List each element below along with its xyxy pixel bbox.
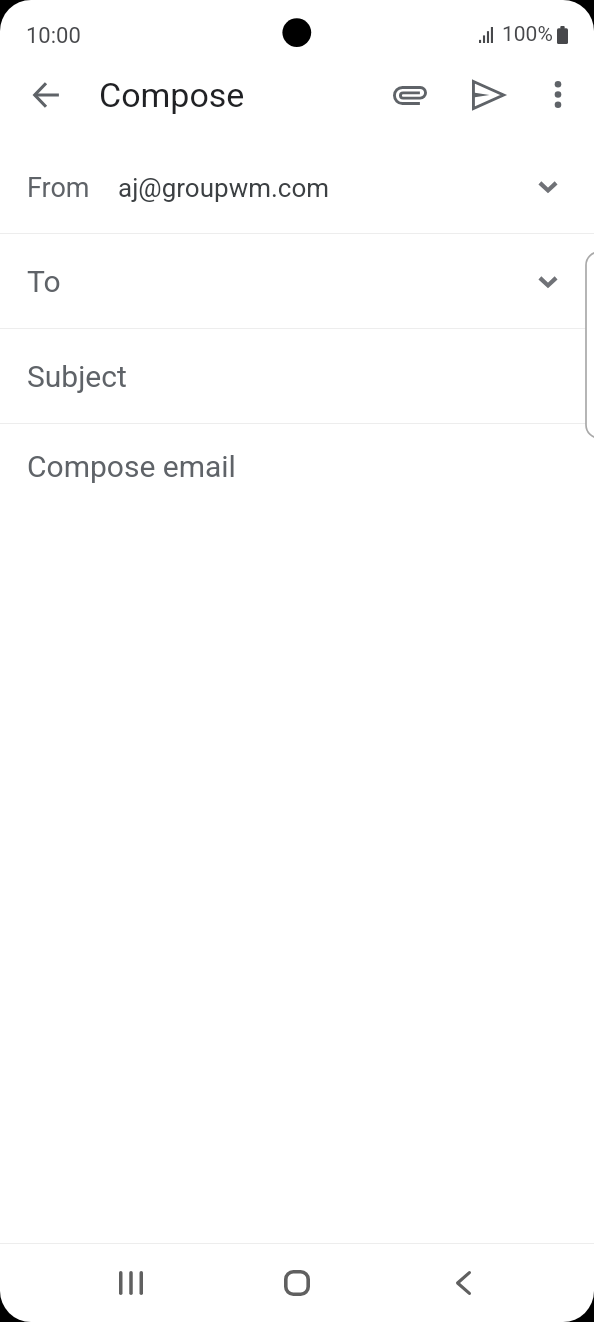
- button[interactable]: From: [0, 139, 594, 233]
- button[interactable]: Recent apps: [91, 1244, 171, 1322]
- staticText: From: [27, 172, 90, 204]
- button[interactable]: Attach file: [377, 63, 442, 128]
- staticText: 100%: [502, 22, 553, 47]
- staticText: aj@groupwm.com: [118, 173, 330, 203]
- button[interactable]: Compose email: [0, 424, 594, 544]
- button[interactable]: Subject: [0, 329, 594, 423]
- button[interactable]: To: [0, 234, 594, 328]
- button[interactable]: Navigate up: [13, 61, 80, 128]
- staticText: Compose email: [27, 449, 236, 484]
- staticText: To: [27, 264, 61, 299]
- button[interactable]: Home: [257, 1244, 337, 1322]
- button[interactable]: Send: [456, 62, 521, 127]
- button[interactable]: More options: [525, 62, 590, 127]
- button[interactable]: Back: [423, 1244, 503, 1322]
- staticText: Compose: [99, 75, 245, 115]
- staticText: Subject: [27, 359, 127, 394]
- staticText: 10:00: [26, 23, 81, 49]
